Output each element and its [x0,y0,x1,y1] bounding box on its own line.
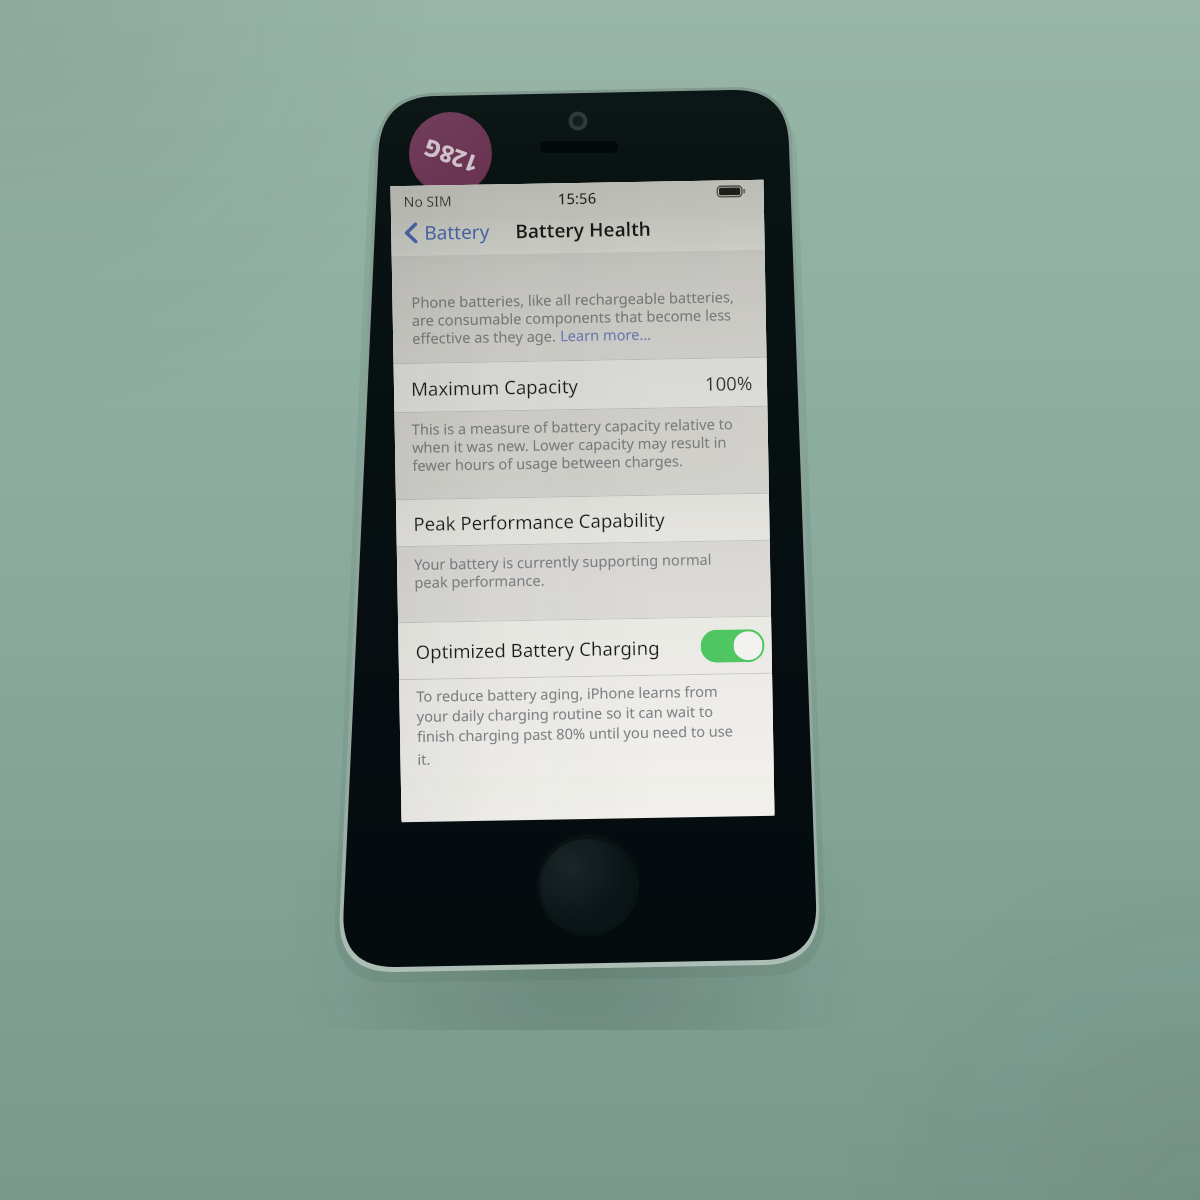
button[interactable]: Optimized Battery Charging [398,617,772,679]
staticText: are consumable components that become le… [412,304,732,330]
staticText: peak performance. [414,570,545,592]
button[interactable]: Peak Performance Capability [396,494,770,546]
staticText: To reduce battery aging, iPhone learns f… [416,681,718,706]
staticText: Optimized Battery Charging [415,635,660,664]
staticText: your daily charging routine so it can wa… [417,701,714,726]
button[interactable]: Maximum Capacity [394,358,767,412]
staticText: 128G [418,132,482,181]
staticText: fewer hours of usage between charges. [412,450,683,475]
button[interactable]: Optimized Battery Charging, on [700,629,765,663]
button[interactable]: Learn more... [560,324,652,345]
staticText: Your battery is currently supporting nor… [414,549,712,574]
staticText: effective as they age. [412,325,560,348]
staticText: No SIM [404,191,452,211]
staticText: This is a measure of battery capacity re… [411,413,734,439]
staticText: Phone batteries, like all rechargeable b… [411,286,735,312]
staticText: 15:56 [557,188,597,208]
staticText: Peak Performance Capability [413,507,665,536]
staticText: it. [417,749,431,769]
staticText: 100% [705,370,753,396]
staticText: Battery Health [515,216,651,244]
button[interactable]: Back to Battery [395,214,498,250]
staticText: finish charging past 80% until you need … [417,720,733,746]
staticText: Battery [424,219,489,246]
staticText: Maximum Capacity [411,373,578,401]
staticText: when it was new. Lower capacity may resu… [412,431,727,457]
